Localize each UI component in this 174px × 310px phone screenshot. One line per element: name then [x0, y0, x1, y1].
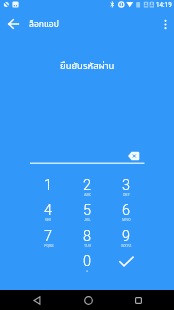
- button[interactable]: [123, 147, 145, 165]
- staticText: ABC: [84, 192, 92, 196]
- staticText: WXYZ: [121, 243, 132, 247]
- button[interactable]: [106, 249, 146, 274]
- staticText: 5: [83, 202, 92, 219]
- button[interactable]: 7: [29, 224, 68, 249]
- button[interactable]: 3: [107, 173, 146, 198]
- staticText: PQRS: [44, 243, 54, 247]
- staticText: 0: [83, 253, 92, 270]
- staticText: 14:19: [156, 1, 172, 8]
- button[interactable]: 1: [29, 173, 68, 198]
- staticText: 7: [44, 228, 53, 245]
- staticText: JKL: [84, 217, 91, 221]
- staticText: GHI: [45, 217, 52, 221]
- button[interactable]: [125, 290, 151, 310]
- button[interactable]: [158, 15, 172, 34]
- button[interactable]: 8: [68, 224, 107, 249]
- button[interactable]: [4, 15, 24, 34]
- staticText: 4: [44, 202, 53, 219]
- button[interactable]: [24, 290, 50, 310]
- staticText: 3: [122, 177, 131, 194]
- staticText: 8: [83, 228, 92, 245]
- button[interactable]: [75, 290, 102, 310]
- button[interactable]: 9: [107, 224, 146, 249]
- staticText: DEF: [123, 192, 130, 196]
- staticText: 2: [83, 177, 92, 194]
- staticText: MNO: [122, 217, 131, 221]
- staticText: +: [86, 268, 89, 272]
- staticText: ล็อกแอป: [29, 18, 59, 31]
- staticText: ยืนยันรหัสผ่าน: [60, 59, 115, 73]
- button[interactable]: 6: [107, 198, 146, 223]
- staticText: 1: [44, 177, 53, 194]
- button[interactable]: 5: [68, 198, 107, 223]
- button[interactable]: 0: [68, 249, 107, 274]
- staticText: 6: [122, 202, 131, 219]
- staticText: TUV: [84, 243, 92, 247]
- staticText: 9: [122, 228, 131, 245]
- button[interactable]: 4: [29, 198, 68, 223]
- button[interactable]: 2: [68, 173, 107, 198]
